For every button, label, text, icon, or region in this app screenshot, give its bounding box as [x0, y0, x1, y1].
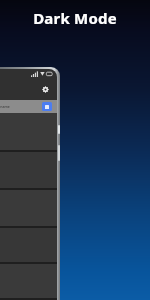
button[interactable]: Settings: [40, 84, 50, 94]
staticText: Dark Mode: [33, 8, 117, 28]
button[interactable]: Previous name: [0, 100, 42, 113]
staticText: Previous name: [0, 104, 10, 109]
button[interactable]: Apply: [42, 102, 52, 111]
button[interactable]: Volume buttons: [58, 145, 60, 161]
button[interactable]: Power button: [58, 125, 60, 134]
